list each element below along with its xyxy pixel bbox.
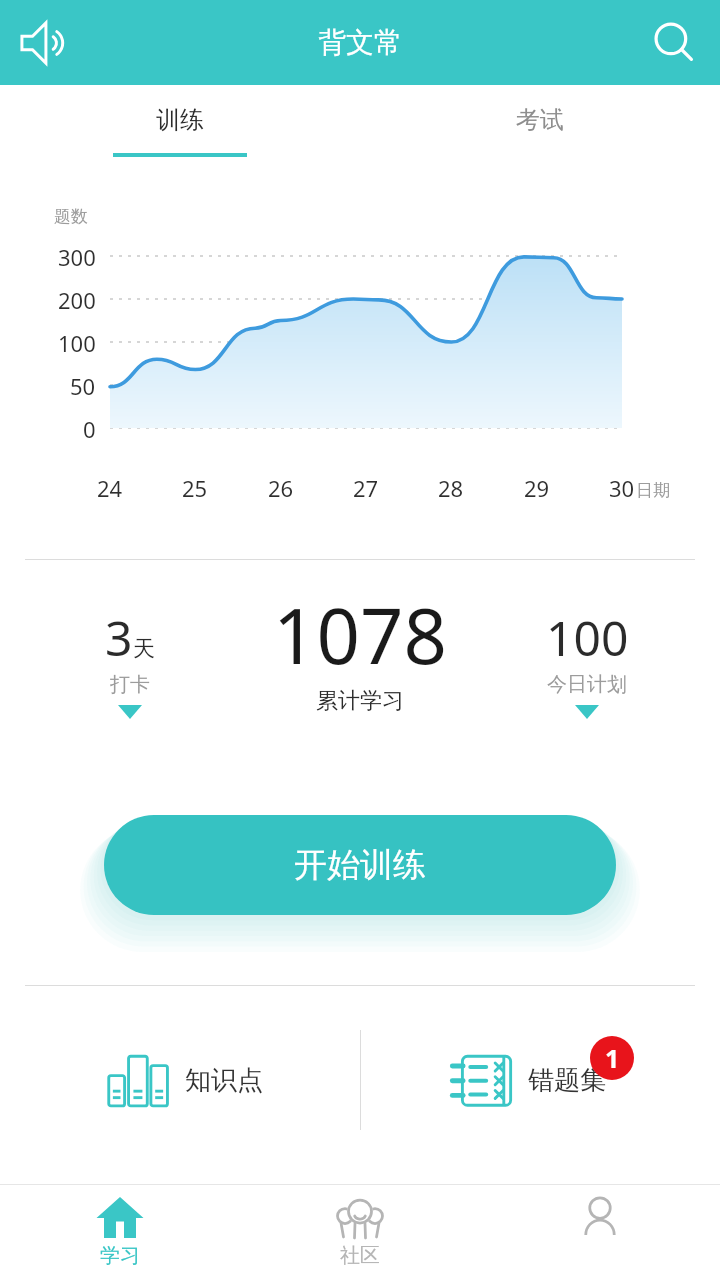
staticText: 100 [546,605,629,670]
button[interactable]: 3 [60,575,200,775]
button[interactable]: 开始训练 [104,815,616,915]
staticText: 今日计划 [547,672,627,697]
staticText: 题数 [54,206,88,227]
button[interactable]: 100 [512,575,662,719]
staticText: 100 [58,328,96,358]
button[interactable]: Search [638,7,710,79]
button[interactable]: 社区 [240,1185,480,1280]
button[interactable]: 学习 [0,1185,240,1280]
button[interactable]: Sound [8,7,80,79]
staticText: 背文常 [318,25,402,60]
button[interactable]: 训练 [0,85,360,160]
staticText: 开始训练 [294,844,426,886]
staticText: 200 [58,285,96,315]
staticText: 1 [605,1041,620,1075]
staticText: 学习 [100,1243,140,1268]
staticText: 打卡 [110,672,150,697]
staticText: 1078 [273,583,447,687]
staticText: 29 [524,473,550,503]
button[interactable]: 错题集 [440,1036,614,1124]
staticText: 300 [58,242,96,272]
staticText: 知识点 [185,1064,263,1097]
staticText: 训练 [156,105,204,135]
staticText: 0 [83,414,96,444]
button[interactable]: Profile [480,1185,720,1280]
staticText: 天 [133,635,155,663]
staticText: 24 [97,473,123,503]
staticText: 错题集 [528,1064,606,1097]
staticText: 3 [105,605,133,670]
staticText: 社区 [340,1243,380,1268]
staticText: 日期 [636,480,670,501]
staticText: 考试 [516,105,564,135]
staticText: 26 [268,473,294,503]
staticText: 25 [182,473,208,503]
staticText: 30 [609,473,635,503]
staticText: 27 [353,473,379,503]
button[interactable]: 知识点 [95,1036,271,1124]
button[interactable]: 1078 [220,575,500,715]
staticText: 28 [438,473,464,503]
staticText: 累计学习 [316,687,404,715]
staticText: 50 [70,371,96,401]
button[interactable]: 考试 [360,85,720,160]
